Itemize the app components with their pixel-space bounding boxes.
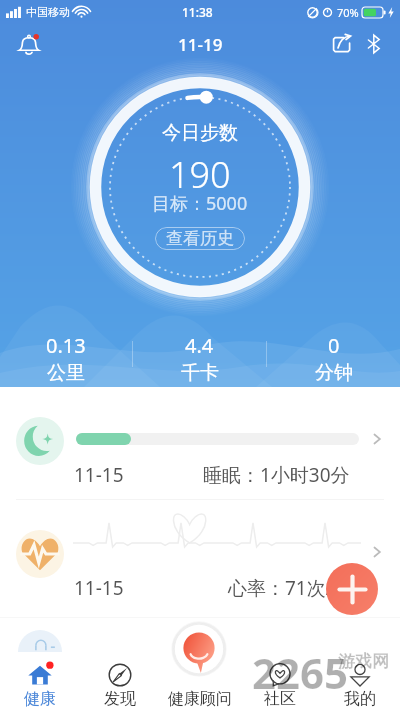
- staticText: 游戏网: [338, 651, 389, 672]
- button[interactable]: 4.4: [133, 332, 266, 385]
- button[interactable]: 11-15: [0, 387, 400, 499]
- staticText: 今日步数: [162, 121, 238, 145]
- staticText: 健康顾问: [168, 689, 232, 709]
- button[interactable]: Add: [326, 563, 378, 615]
- staticText: 2265: [252, 644, 349, 701]
- staticText: 11-19: [178, 33, 223, 56]
- button[interactable]: Bluetooth: [358, 28, 390, 60]
- staticText: 健康: [24, 689, 56, 709]
- button[interactable]: 健康顾问: [160, 617, 240, 711]
- button[interactable]: 查看历史: [155, 227, 245, 250]
- staticText: 0.13: [46, 332, 86, 359]
- staticText: 心率：71次/分: [228, 575, 352, 601]
- button[interactable]: 11-15: [0, 500, 400, 612]
- staticText: 我的: [344, 689, 376, 709]
- staticText: 中国移动: [26, 5, 70, 19]
- button[interactable]: 发现: [80, 617, 160, 711]
- button[interactable]: Share: [326, 28, 358, 60]
- staticText: 70%: [337, 5, 359, 20]
- staticText: 公里: [47, 361, 85, 385]
- button[interactable]: 我的: [320, 617, 400, 711]
- staticText: 11-15: [74, 575, 124, 601]
- staticText: 分钟: [315, 361, 353, 385]
- button[interactable]: Notifications: [14, 29, 44, 59]
- button[interactable]: 社区: [240, 617, 320, 711]
- staticText: 目标：5000: [152, 191, 248, 216]
- staticText: 190: [169, 150, 231, 199]
- button[interactable]: 0: [267, 332, 400, 385]
- staticText: 4.4: [185, 332, 214, 359]
- staticText: 查看历史: [166, 228, 234, 249]
- staticText: 11-15: [74, 462, 124, 488]
- button[interactable]: 0.13: [0, 332, 132, 385]
- button[interactable]: 健康: [0, 617, 80, 711]
- staticText: 千卡: [181, 361, 219, 385]
- staticText: 睡眠：1小时30分: [203, 462, 350, 488]
- staticText: 11:38: [182, 4, 213, 20]
- staticText: 0: [328, 332, 340, 359]
- staticText: 发现: [104, 689, 136, 709]
- staticText: 社区: [264, 689, 296, 709]
